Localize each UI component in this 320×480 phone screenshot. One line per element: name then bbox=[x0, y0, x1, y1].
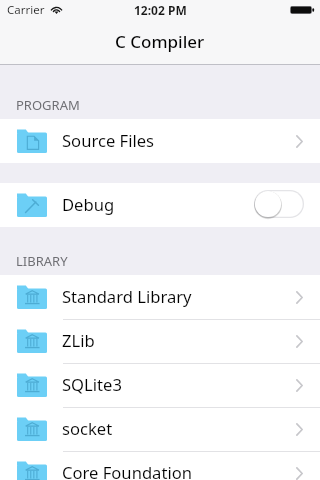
staticText: SQLite3 bbox=[62, 373, 122, 396]
staticText: C Compiler bbox=[115, 30, 205, 53]
button[interactable]: socket bbox=[0, 407, 320, 451]
staticText: Carrier bbox=[7, 2, 45, 18]
button[interactable]: Standard Library bbox=[0, 275, 320, 319]
button[interactable]: Debug bbox=[0, 183, 320, 227]
button[interactable]: Debug switch, off bbox=[254, 190, 304, 218]
staticText: Core Foundation bbox=[62, 461, 192, 480]
button[interactable]: ZLib bbox=[0, 319, 320, 363]
button[interactable]: SQLite3 bbox=[0, 363, 320, 407]
staticText: Standard Library bbox=[62, 285, 192, 308]
staticText: PROGRAM bbox=[16, 96, 80, 114]
staticText: Source Files bbox=[62, 129, 155, 152]
staticText: 12:02 PM bbox=[134, 2, 187, 18]
staticText: ZLib bbox=[62, 329, 95, 352]
staticText: socket bbox=[62, 417, 113, 440]
button[interactable]: Source Files bbox=[0, 119, 320, 163]
staticText: Debug bbox=[62, 193, 115, 216]
staticText: LIBRARY bbox=[16, 252, 68, 270]
button[interactable]: Core Foundation bbox=[0, 451, 320, 480]
